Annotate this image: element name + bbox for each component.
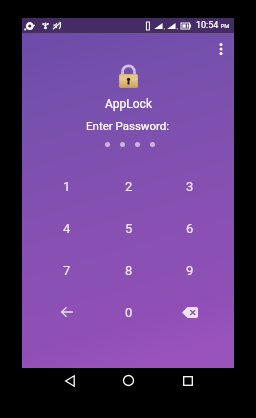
button[interactable]: 0	[98, 291, 159, 333]
button[interactable]: Recent apps	[158, 367, 217, 394]
button[interactable]: 9	[159, 249, 220, 291]
staticText: PM	[219, 22, 230, 29]
staticText: 0	[125, 305, 133, 320]
button[interactable]: 3	[159, 165, 220, 207]
button[interactable]: Home	[99, 367, 158, 394]
button[interactable]: 8	[98, 249, 159, 291]
other: Back	[57, 302, 77, 322]
staticText: 10:54	[196, 20, 219, 31]
staticText: 4	[63, 221, 71, 236]
button[interactable]: 1	[36, 165, 98, 207]
staticText: 8	[125, 263, 133, 278]
button[interactable]: Back	[41, 367, 99, 394]
staticText: 5	[125, 221, 133, 236]
button[interactable]: 4	[36, 207, 98, 249]
staticText: Enter Password:	[86, 119, 170, 132]
button[interactable]: Back	[36, 291, 98, 333]
staticText: 6	[186, 221, 194, 236]
button[interactable]: 5	[98, 207, 159, 249]
staticText: 9	[186, 263, 194, 278]
staticText: 1	[63, 179, 71, 194]
button[interactable]: 7	[36, 249, 98, 291]
button[interactable]: 6	[159, 207, 220, 249]
button[interactable]: 2	[98, 165, 159, 207]
staticText: 3	[186, 179, 194, 194]
other: Delete	[180, 302, 200, 322]
staticText: 2	[125, 179, 133, 194]
staticText: 7	[63, 263, 71, 278]
staticText: AppLock	[105, 97, 152, 111]
button[interactable]: More options	[211, 39, 231, 59]
button[interactable]: Delete	[159, 291, 220, 333]
